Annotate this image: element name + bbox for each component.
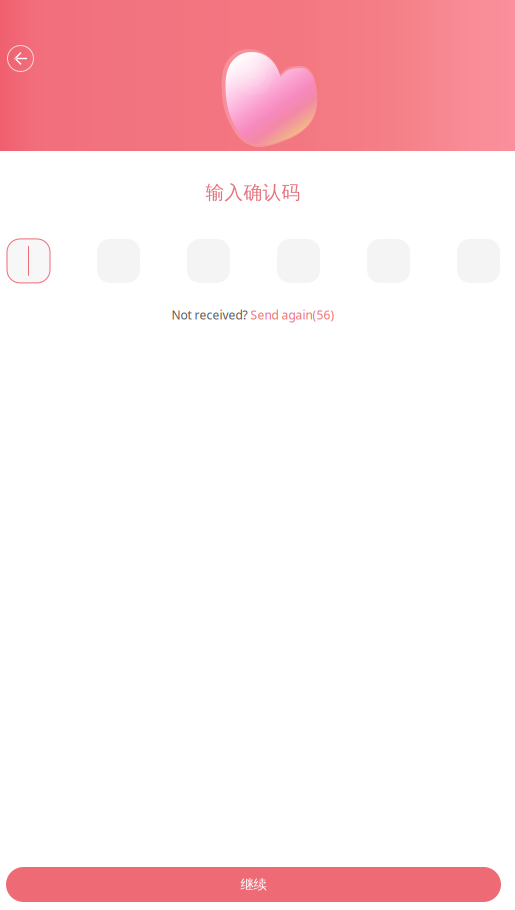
staticText: 继续 [240, 876, 266, 893]
button[interactable]: Back [4, 42, 37, 75]
button[interactable]: Send again(56) [250, 307, 334, 323]
button[interactable]: Code digit 1, active [7, 239, 50, 283]
button[interactable]: 继续 [6, 867, 501, 902]
staticText: Send again(56) [250, 307, 334, 323]
staticText: 输入确认码 [205, 181, 300, 204]
staticText: Not received? [171, 307, 250, 323]
